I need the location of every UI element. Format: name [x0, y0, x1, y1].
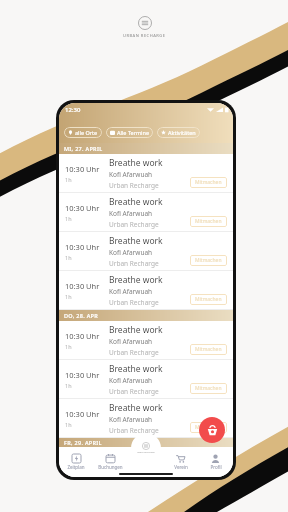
staticText: 10:30 Uhr: [65, 409, 100, 419]
staticText: Urban Recharge: [109, 181, 159, 190]
staticText: URBAN RECHARGE: [137, 451, 155, 454]
staticText: Urban Recharge: [109, 348, 159, 357]
staticText: 12:30: [65, 106, 81, 114]
button[interactable]: Mitmachen: [190, 344, 227, 355]
button[interactable]: Alle Termine: [106, 127, 153, 138]
staticText: Urban Recharge: [109, 387, 159, 396]
staticText: Breathe work: [109, 274, 163, 286]
staticText: 1h: [65, 421, 72, 428]
button[interactable]: Mitmachen: [190, 177, 227, 188]
staticText: Kofi Afarwuah: [109, 337, 153, 346]
staticText: Mitmachen: [195, 179, 222, 186]
button[interactable]: Warenkorb: [199, 417, 225, 443]
staticText: Kofi Afarwuah: [109, 287, 153, 296]
button[interactable]: 10:30 Uhr: [59, 271, 233, 309]
staticText: 10:30 Uhr: [65, 242, 100, 252]
staticText: 1h: [65, 343, 72, 350]
staticText: Mitmachen: [195, 218, 222, 225]
staticText: Zeitplan: [67, 464, 85, 470]
button[interactable]: Mitmachen: [190, 294, 227, 305]
button[interactable]: Buchungen: [93, 452, 128, 472]
button[interactable]: Mitmachen: [190, 255, 227, 266]
button[interactable]: Verein: [163, 452, 198, 472]
staticText: 1h: [65, 176, 72, 183]
button[interactable]: 10:30 Uhr: [59, 232, 233, 270]
button[interactable]: Mitmachen: [190, 383, 227, 394]
button[interactable]: 10:30 Uhr: [59, 321, 233, 359]
button[interactable]: alle Orte: [64, 127, 102, 138]
staticText: 10:30 Uhr: [65, 370, 100, 380]
button[interactable]: 10:30 Uhr: [59, 154, 233, 192]
button[interactable]: Aktivitäten: [157, 127, 200, 138]
staticText: Mitmachen: [195, 296, 222, 303]
button[interactable]: 10:30 Uhr: [59, 399, 233, 437]
staticText: Breathe work: [109, 402, 163, 414]
staticText: 1h: [65, 215, 72, 222]
staticText: Breathe work: [109, 363, 163, 375]
staticText: 1h: [65, 254, 72, 261]
staticText: MI, 27. APRIL: [64, 145, 103, 152]
staticText: URBAN RECHARGE: [123, 33, 166, 38]
staticText: 1h: [65, 382, 72, 389]
staticText: 10:30 Uhr: [65, 281, 100, 291]
staticText: Buchungen: [98, 464, 123, 470]
staticText: Mitmachen: [195, 257, 222, 264]
staticText: Kofi Afarwuah: [109, 248, 153, 257]
staticText: Urban Recharge: [109, 259, 159, 268]
button[interactable]: Urban Recharge Home: [131, 433, 161, 463]
staticText: alle Orte: [75, 129, 98, 136]
staticText: 10:30 Uhr: [65, 331, 100, 341]
button[interactable]: 10:30 Uhr: [59, 360, 233, 398]
staticText: Mitmachen: [195, 385, 222, 392]
staticText: Verein: [174, 464, 188, 470]
staticText: Profil: [210, 464, 222, 470]
button[interactable]: Profil: [198, 452, 233, 472]
staticText: Alle Termine: [117, 129, 149, 136]
staticText: Breathe work: [109, 235, 163, 247]
staticText: Urban Recharge: [109, 220, 159, 229]
staticText: Mitmachen: [195, 424, 222, 431]
staticText: Urban Recharge: [109, 426, 159, 435]
staticText: FR, 29. APRIL: [64, 439, 102, 446]
staticText: Breathe work: [109, 157, 163, 169]
staticText: Mitmachen: [195, 346, 222, 353]
staticText: Kofi Afarwuah: [109, 415, 153, 424]
staticText: Breathe work: [109, 196, 163, 208]
staticText: DO, 28. APR: [64, 312, 98, 319]
staticText: Urban Recharge: [109, 298, 159, 307]
staticText: Kofi Afarwuah: [109, 376, 153, 385]
staticText: Kofi Afarwuah: [109, 170, 153, 179]
button[interactable]: Zeitplan: [59, 452, 93, 472]
button[interactable]: Mitmachen: [190, 422, 227, 433]
staticText: Kofi Afarwuah: [109, 209, 153, 218]
staticText: 10:30 Uhr: [65, 203, 100, 213]
staticText: 1h: [65, 293, 72, 300]
staticText: 10:30 Uhr: [65, 164, 100, 174]
staticText: Breathe work: [109, 324, 163, 336]
button[interactable]: 10:30 Uhr: [59, 193, 233, 231]
button[interactable]: Mitmachen: [190, 216, 227, 227]
staticText: Aktivitäten: [168, 129, 196, 136]
